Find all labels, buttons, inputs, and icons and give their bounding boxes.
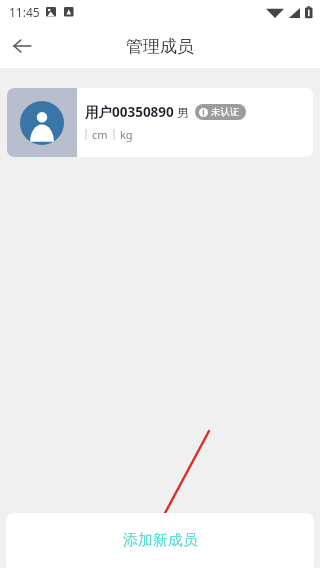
staticText: 11:45 (9, 4, 40, 20)
staticText: kg (120, 127, 133, 142)
button[interactable]: Back (0, 24, 44, 68)
button[interactable]: 添加新成员 (6, 513, 314, 568)
button[interactable]: 未认证 (195, 104, 246, 120)
staticText: 未认证 (211, 106, 240, 118)
staticText: cm (92, 127, 108, 142)
staticText: 管理成员 (126, 36, 194, 57)
button[interactable]: 用户00350890 (7, 88, 313, 157)
staticText: 男 (177, 105, 189, 120)
staticText: 添加新成员 (123, 531, 198, 550)
staticText: 用户00350890 (85, 103, 174, 121)
